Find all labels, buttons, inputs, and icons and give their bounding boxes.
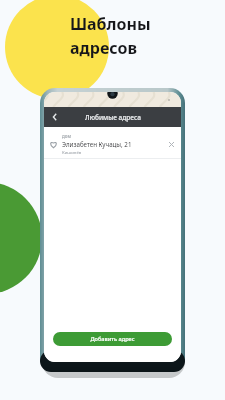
button[interactable]: Удалить адрес [166,139,176,149]
button[interactable]: Добавить адрес [53,332,172,346]
staticText: Шаблоны [70,13,151,35]
staticText: Кишинёв [62,149,82,155]
staticText: Добавить адрес [90,335,135,343]
button[interactable]: дом [44,130,181,158]
staticText: адресов [70,37,137,59]
button[interactable]: Назад [47,109,63,125]
staticText: Элизабетен Кучацы, 21 [62,140,132,148]
staticText: Любимые адреса [85,113,141,122]
staticText: дом [62,133,71,139]
